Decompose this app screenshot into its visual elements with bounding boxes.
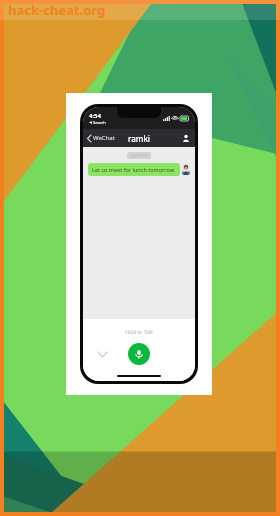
button[interactable] xyxy=(182,163,190,175)
staticText: WeChat xyxy=(93,134,115,142)
staticText: hack-cheat.org xyxy=(8,1,106,19)
staticText: Let us meet for lunch tomorrow. xyxy=(92,166,176,173)
button[interactable]: Collapse keyboard xyxy=(95,347,109,361)
staticText: 4:54 PM xyxy=(131,153,147,158)
button[interactable]: Contact profile xyxy=(181,133,191,143)
staticText: Hold to Talk xyxy=(125,329,153,336)
staticText: ramki xyxy=(128,133,151,144)
staticText: 4:54 xyxy=(89,112,101,120)
staticText: Search xyxy=(93,120,106,125)
button[interactable]: WeChat xyxy=(87,134,115,142)
button[interactable]: Let us meet for lunch tomorrow. xyxy=(88,163,180,176)
button[interactable]: Record voice message xyxy=(128,343,150,365)
